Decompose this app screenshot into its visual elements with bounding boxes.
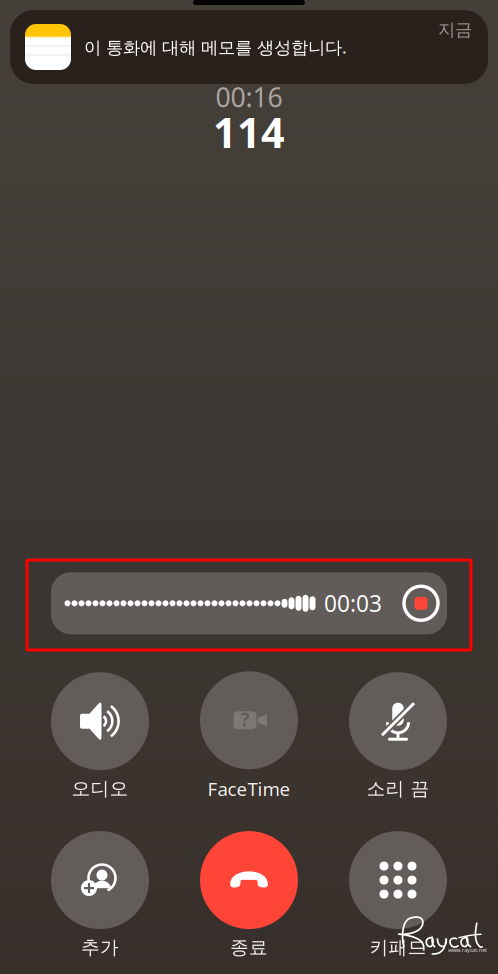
- staticText: 종료: [230, 936, 268, 959]
- button[interactable]: 종료: [184, 831, 314, 959]
- button[interactable]: 00:03: [51, 572, 447, 634]
- staticText: 소리 끔: [366, 777, 429, 800]
- button[interactable]: 추가: [35, 831, 165, 959]
- staticText: ?: [240, 707, 249, 732]
- button[interactable]: 키패드: [333, 831, 463, 959]
- staticText: 오디오: [71, 777, 128, 800]
- staticText: FaceTime: [207, 776, 290, 801]
- button[interactable]: 오디오: [35, 672, 165, 800]
- button[interactable]: 지금: [10, 10, 488, 84]
- staticText: 이 통화에 대해 메모를 생성합니다.: [84, 35, 347, 58]
- staticText: 114: [213, 105, 285, 159]
- staticText: 추가: [81, 936, 119, 959]
- button[interactable]: 소리 끔: [333, 672, 463, 800]
- staticText: 지금: [438, 19, 472, 40]
- staticText: 00:03: [324, 588, 382, 618]
- staticText: 키패드: [369, 936, 426, 959]
- button[interactable]: ?: [184, 671, 314, 801]
- staticText: 00:16: [215, 79, 282, 115]
